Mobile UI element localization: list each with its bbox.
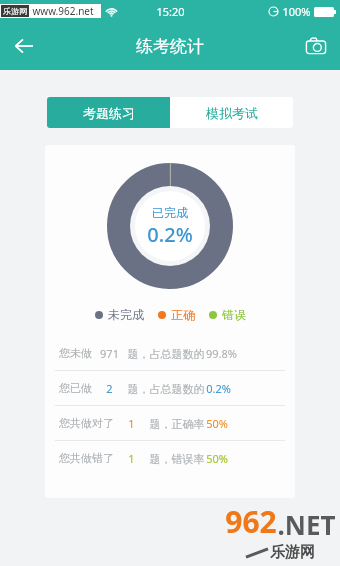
button[interactable]: Back xyxy=(0,22,48,70)
button[interactable]: 您共做错了 xyxy=(45,441,295,475)
staticText: 0.2% xyxy=(206,381,231,396)
staticText: 1 xyxy=(128,451,135,466)
button[interactable]: 考题练习 xyxy=(47,97,170,128)
staticText: 正确 xyxy=(171,307,195,322)
staticText: 题，正确率 xyxy=(148,416,206,431)
staticText: 100% xyxy=(282,4,311,19)
staticText: 99.8% xyxy=(206,346,237,361)
staticText: 题，占总题数的 xyxy=(126,346,206,361)
staticText: 971 xyxy=(100,346,119,361)
staticText: 1 xyxy=(128,416,135,431)
staticText: 已完成 xyxy=(152,205,188,220)
staticText: 50% xyxy=(206,416,228,431)
staticText: 练考统计 xyxy=(136,36,204,57)
button[interactable]: Camera xyxy=(292,22,340,70)
staticText: 错误 xyxy=(222,307,246,322)
staticText: 模拟考试 xyxy=(206,105,258,121)
staticText: 2 xyxy=(106,381,113,396)
staticText: 考题练习 xyxy=(83,105,135,121)
staticText: 未完成 xyxy=(108,307,144,322)
staticText: .NET xyxy=(277,507,336,542)
staticText: 乐游网 xyxy=(3,6,27,16)
staticText: 乐游网 xyxy=(270,543,315,562)
staticText: 15:20 xyxy=(156,4,185,19)
staticText: 您未做 xyxy=(59,346,92,360)
button[interactable]: 您未做 xyxy=(45,336,295,370)
staticText: www.962.net xyxy=(32,4,94,18)
staticText: 题，错误率 xyxy=(148,451,206,466)
staticText: 50% xyxy=(206,451,228,466)
staticText: 962 xyxy=(225,501,277,542)
staticText: 您共做错了 xyxy=(59,451,114,465)
button[interactable]: 您共做对了 xyxy=(45,406,295,440)
staticText: 您共做对了 xyxy=(59,416,114,430)
staticText: 0.2% xyxy=(147,221,193,248)
button[interactable]: 您已做 xyxy=(45,371,295,405)
staticText: 题，占总题数的 xyxy=(126,381,206,396)
button[interactable]: 模拟考试 xyxy=(170,97,293,128)
staticText: 您已做 xyxy=(59,381,92,395)
